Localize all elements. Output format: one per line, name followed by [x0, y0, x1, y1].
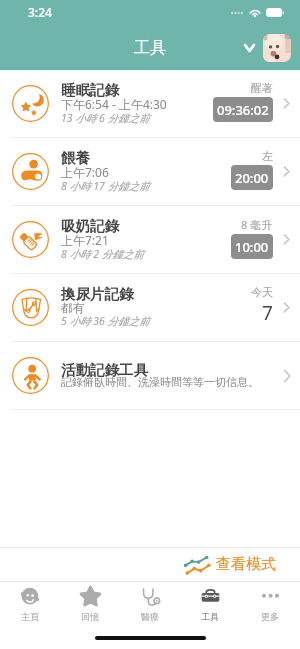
- staticText: 主頁: [21, 611, 39, 622]
- staticText: 醒著: [251, 81, 273, 95]
- button[interactable]: 醫療: [120, 582, 180, 625]
- staticText: 醫療: [141, 611, 159, 622]
- staticText: 查看模式: [216, 555, 276, 574]
- button[interactable]: Baby profile: [263, 34, 291, 62]
- staticText: 吸奶記錄: [61, 217, 119, 235]
- staticText: 工具: [134, 38, 166, 58]
- staticText: 下午6:54 - 上午4:30: [61, 96, 167, 112]
- staticText: 記錄俯臥時間、洗澡時間等等一切信息。: [61, 375, 259, 389]
- button[interactable]: 餵養: [0, 138, 300, 205]
- staticText: 8 毫升: [241, 217, 273, 232]
- staticText: 工具: [201, 611, 219, 622]
- staticText: 7: [262, 300, 273, 326]
- button[interactable]: 睡眠記錄: [0, 70, 300, 137]
- staticText: 換尿片記錄: [61, 285, 134, 303]
- staticText: 活動記錄工具: [61, 361, 148, 379]
- staticText: 今天: [251, 285, 273, 299]
- button[interactable]: 主頁: [0, 582, 60, 625]
- staticText: 左: [262, 149, 273, 163]
- button[interactable]: 回憶: [60, 582, 120, 625]
- staticText: 13 小時 6 分鐘之前: [61, 111, 150, 125]
- button[interactable]: 換尿片記錄: [0, 274, 300, 341]
- staticText: 10:00: [235, 238, 269, 256]
- staticText: 5 小時 36 分鐘之前: [61, 314, 150, 328]
- button[interactable]: Select baby: [240, 39, 258, 57]
- staticText: 09:36:02: [217, 101, 269, 119]
- staticText: 餵養: [61, 149, 90, 167]
- staticText: 8 小時 2 分鐘之前: [61, 247, 144, 261]
- staticText: 上午7:21: [61, 232, 109, 248]
- staticText: 8 小時 17 分鐘之前: [61, 179, 150, 193]
- button[interactable]: 工具: [180, 582, 240, 625]
- staticText: 都有: [61, 300, 85, 315]
- staticText: 更多: [261, 611, 279, 622]
- button[interactable]: 查看模式: [180, 552, 280, 577]
- button[interactable]: 活動記錄工具: [0, 342, 300, 409]
- button[interactable]: 更多: [240, 582, 300, 625]
- staticText: 3:24: [28, 4, 52, 20]
- button[interactable]: 吸奶記錄: [0, 206, 300, 273]
- staticText: 上午7:06: [61, 164, 109, 180]
- staticText: 回憶: [81, 611, 99, 622]
- staticText: 睡眠記錄: [61, 81, 119, 99]
- staticText: 20:00: [235, 169, 269, 187]
